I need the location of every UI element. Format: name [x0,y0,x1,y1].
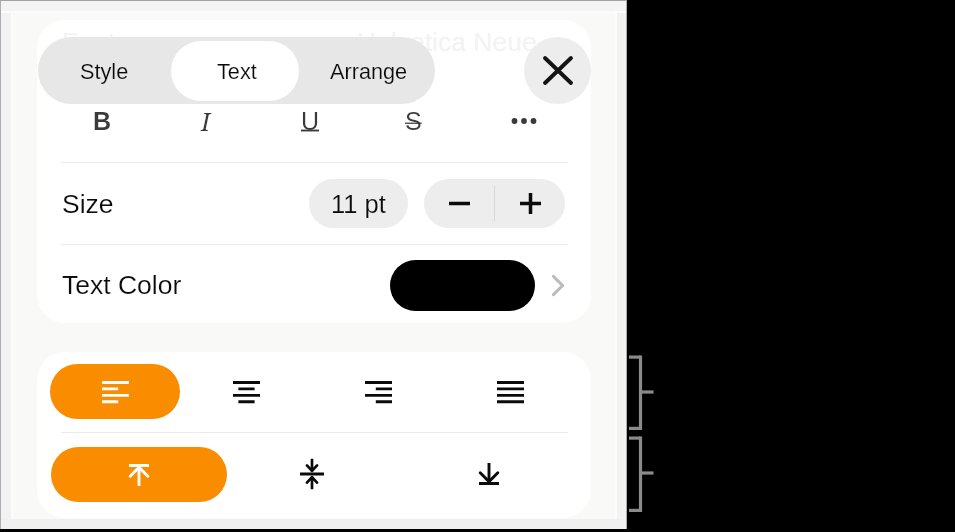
staticText: 11 pt [331,190,386,218]
button[interactable]: Align middle [282,444,342,504]
button[interactable]: Decrease size [424,179,494,228]
button[interactable]: Text [171,37,303,104]
button[interactable]: More text options [495,92,553,150]
staticText: Text [217,59,257,83]
button[interactable]: Align top [51,447,227,502]
button[interactable]: U [281,92,339,150]
button[interactable]: Align bottom [459,444,519,504]
staticText: Size [62,189,114,219]
button[interactable]: Align center [213,364,279,419]
button[interactable]: I [177,92,235,150]
staticText: I [201,104,211,138]
staticText: S [405,107,422,135]
button[interactable]: 11 pt [309,179,408,228]
button[interactable] [37,244,591,323]
button[interactable]: S [384,92,442,150]
staticText: U [301,107,320,135]
button[interactable]: Style [38,37,171,104]
button[interactable]: Arrange [303,37,435,104]
staticText: B [93,107,112,135]
button[interactable]: Align right [345,364,411,419]
button[interactable]: Close [524,37,591,104]
button[interactable]: Justify [477,364,543,419]
staticText: Arrange [330,59,408,83]
button[interactable]: Align left [50,364,180,419]
staticText: Text Color [62,270,182,300]
staticText: Helvetica Neue [357,27,537,57]
button[interactable]: B [73,92,131,150]
staticText: Font [62,27,116,57]
button[interactable]: Increase size [495,179,565,228]
staticText: Style [80,59,129,83]
